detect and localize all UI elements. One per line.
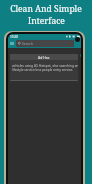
staticText: Ad Hoc — [38, 55, 50, 60]
staticText: vehicles using 4G Hotspot, else searchin… — [12, 64, 78, 68]
staticText: Clean And Simple — [10, 3, 82, 15]
staticText: lifestyle service less people entry serv… — [12, 68, 74, 72]
staticText: Interface — [28, 15, 65, 27]
staticText: 10:30 — [10, 35, 19, 39]
button[interactable]: Ad Hoc — [10, 54, 78, 81]
button[interactable]: More — [80, 54, 81, 57]
staticText: Search — [22, 41, 33, 46]
button[interactable]: Search — [16, 40, 74, 47]
